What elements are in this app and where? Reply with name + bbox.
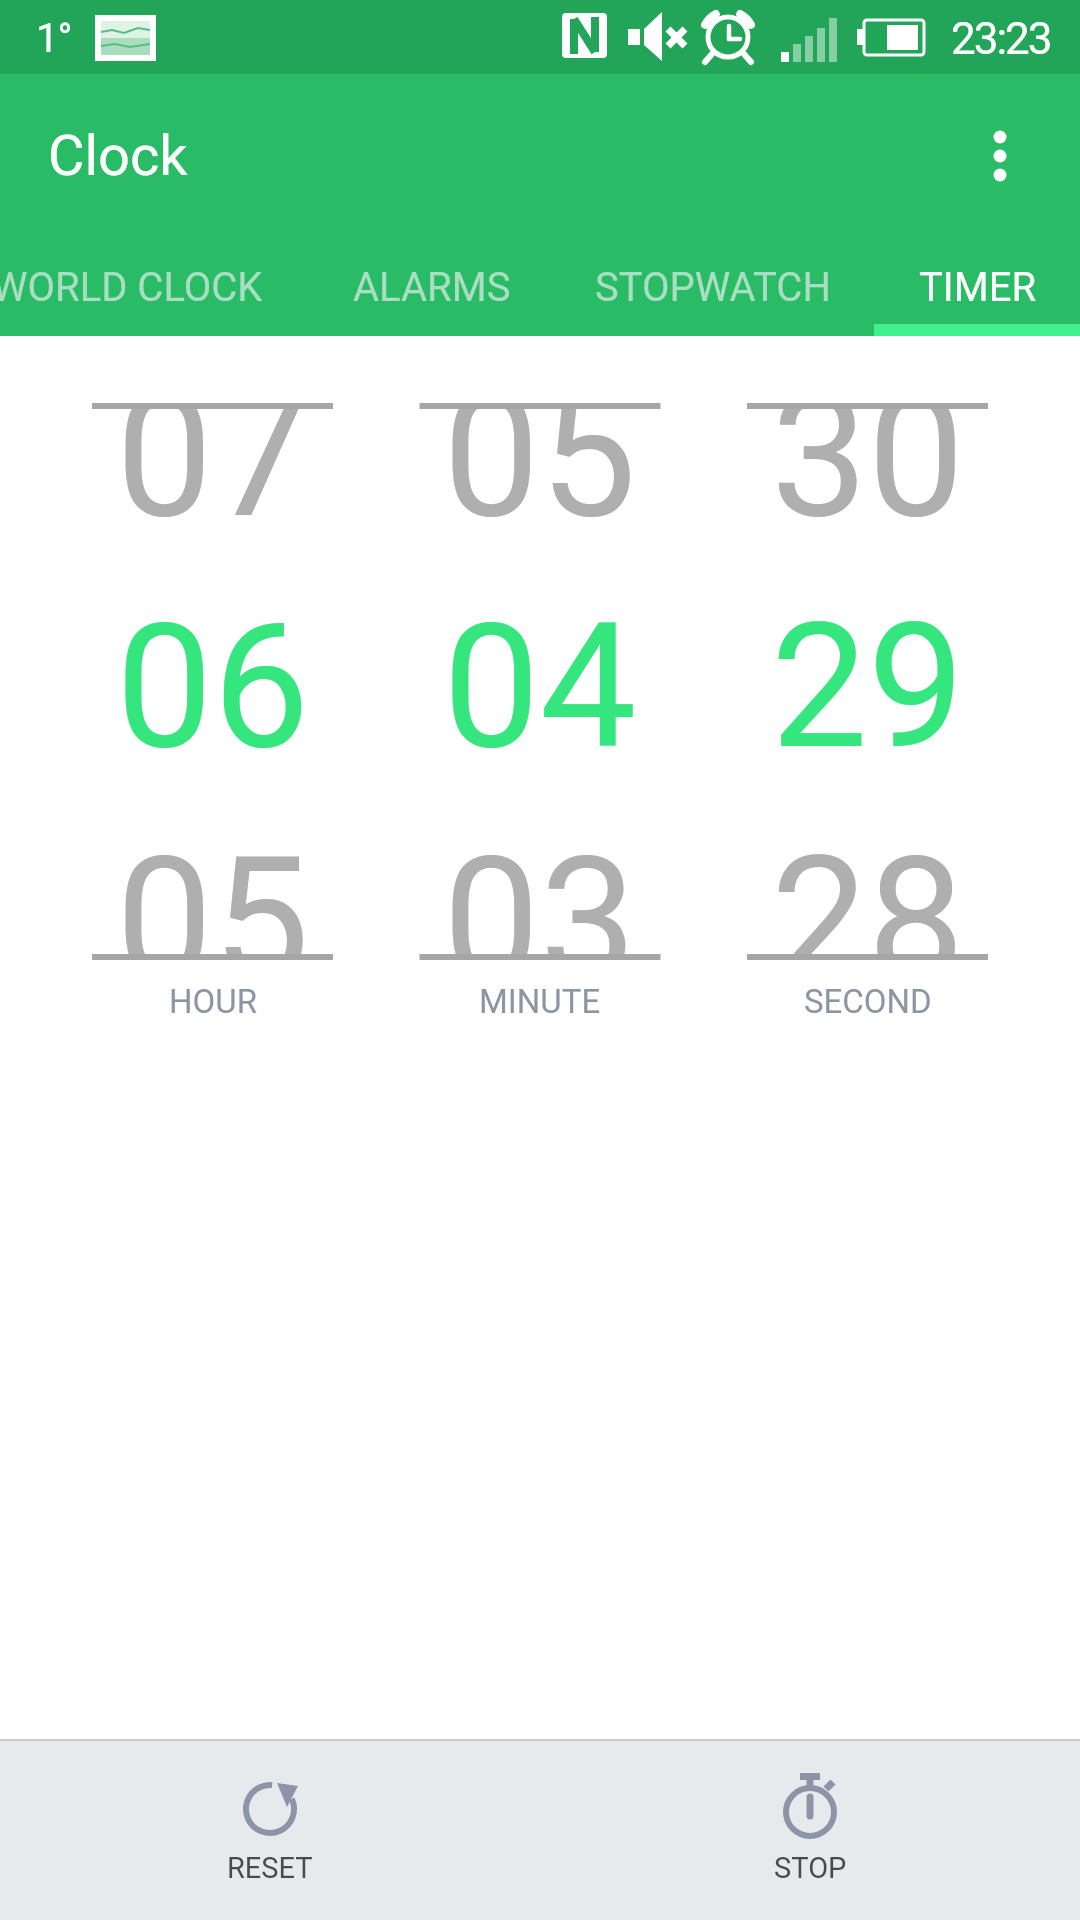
button[interactable] <box>952 108 1048 204</box>
staticText: ALARMS <box>353 264 511 311</box>
staticText: 05 <box>116 819 310 960</box>
button[interactable]: RESET <box>160 1759 380 1909</box>
staticText: SECOND <box>804 982 932 1021</box>
staticText: 05 <box>443 403 637 557</box>
staticText: WORLD CLOCK <box>0 264 263 311</box>
button[interactable]: ALARMS <box>262 240 602 336</box>
button[interactable]: WORLD CLOCK <box>0 240 297 336</box>
staticText: MINUTE <box>479 982 601 1021</box>
staticText: STOP <box>774 1851 847 1885</box>
button[interactable]: STOP <box>700 1759 920 1909</box>
staticText: 03 <box>443 819 637 960</box>
staticText: HOUR <box>169 982 257 1021</box>
staticText: 07 <box>116 403 310 557</box>
staticText: Clock <box>48 123 188 189</box>
button[interactable]: STOPWATCH <box>543 240 883 336</box>
button[interactable] <box>93 403 333 960</box>
staticText: 06 <box>116 586 310 788</box>
staticText: 23:23 <box>951 13 1051 65</box>
staticText: 1° <box>36 15 72 62</box>
staticText: RESET <box>227 1851 313 1885</box>
staticText: TIMER <box>919 264 1037 311</box>
staticText: 04 <box>443 586 637 788</box>
staticText: 29 <box>771 586 965 788</box>
staticText: STOPWATCH <box>595 264 831 311</box>
button[interactable] <box>420 403 660 960</box>
button[interactable]: TIMER <box>808 240 1080 336</box>
button[interactable] <box>748 403 988 960</box>
staticText: 30 <box>771 403 965 557</box>
staticText: 28 <box>771 819 965 960</box>
